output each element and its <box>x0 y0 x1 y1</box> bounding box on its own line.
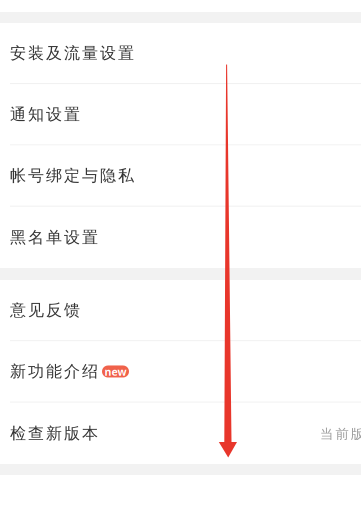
button[interactable]: 意见反馈 <box>0 280 361 341</box>
button[interactable]: 黑名单设置 <box>0 207 361 268</box>
button[interactable]: 帐号绑定与隐私 <box>0 145 361 207</box>
staticText: 帐号绑定与隐私 <box>10 166 134 185</box>
staticText: 当前版本 7.0.3 <box>320 424 361 442</box>
staticText: new <box>104 364 126 379</box>
staticText: 通知设置 <box>10 104 80 124</box>
staticText: 意见反馈 <box>10 300 80 320</box>
staticText: 检查新版本 <box>10 423 98 443</box>
staticText: 安装及流量设置 <box>10 43 134 63</box>
button[interactable]: 新功能介绍 <box>0 341 361 403</box>
button[interactable]: 安装及流量设置 <box>0 23 361 84</box>
button[interactable]: 通知设置 <box>0 84 361 145</box>
button[interactable]: 检查新版本 <box>0 403 361 464</box>
staticText: 黑名单设置 <box>10 227 98 247</box>
staticText: 新功能介绍 <box>10 362 98 381</box>
